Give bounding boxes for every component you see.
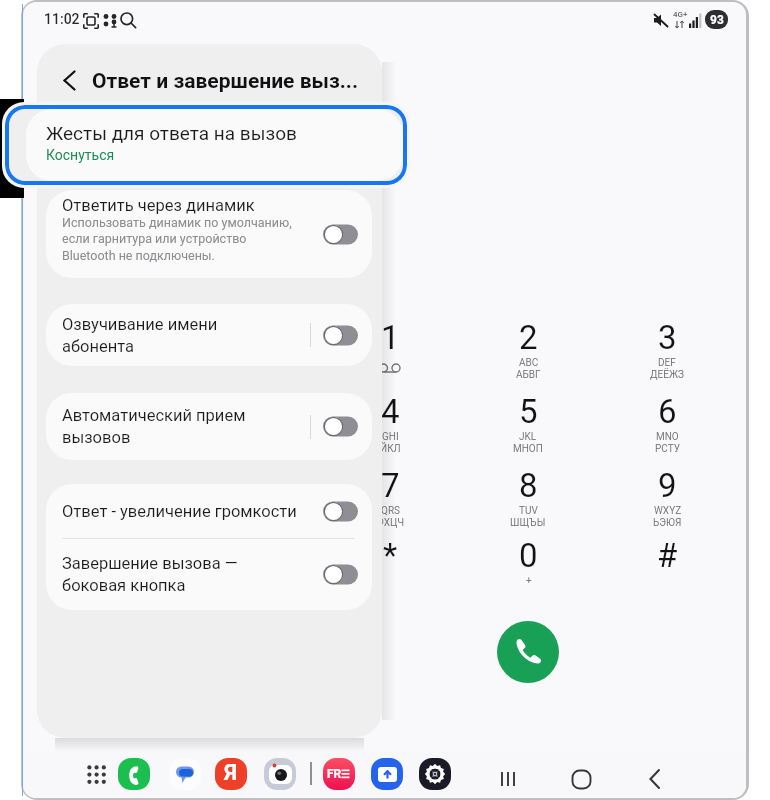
staticText: 1 xyxy=(381,318,400,357)
staticText: + xyxy=(526,575,532,587)
staticText: ABC xyxy=(519,357,539,369)
staticText: 4 xyxy=(381,392,400,431)
button[interactable]: # xyxy=(612,536,722,608)
button[interactable]: Call xyxy=(497,621,559,683)
button[interactable] xyxy=(323,501,358,522)
button[interactable]: 2 xyxy=(473,318,583,390)
staticText: РСТУ xyxy=(655,443,680,455)
staticText: ДЕЁЖЗ xyxy=(650,369,684,381)
button[interactable]: Settings xyxy=(418,757,452,791)
staticText: ЙКЛ xyxy=(380,443,401,455)
staticText: DEF xyxy=(658,357,676,369)
button[interactable]: Yandex xyxy=(214,757,248,791)
staticText: МНОП xyxy=(513,443,543,455)
staticText: Завершение вызова — боковая кнопка xyxy=(62,554,315,595)
staticText: Автоматический прием вызовов xyxy=(62,406,310,447)
button[interactable]: Завершение вызова — боковая кнопка xyxy=(46,539,372,610)
staticText: 8 xyxy=(519,466,538,505)
button[interactable] xyxy=(323,325,358,346)
button[interactable]: 6 xyxy=(612,392,722,464)
staticText: GHI xyxy=(382,431,399,443)
staticText: 93 xyxy=(710,13,724,27)
staticText: 9 xyxy=(658,466,677,505)
staticText: Коснуться xyxy=(46,147,115,163)
staticText: MNO xyxy=(656,431,679,443)
button[interactable]: 1 xyxy=(335,318,445,390)
button[interactable]: Автоматический прием вызовов xyxy=(46,393,372,460)
staticText: TUV xyxy=(519,505,538,517)
button[interactable]: 4 xyxy=(335,392,445,464)
button[interactable]: Back xyxy=(47,58,91,102)
button[interactable] xyxy=(323,224,358,245)
staticText: Я xyxy=(224,760,238,786)
button[interactable]: Recent apps xyxy=(486,757,530,798)
staticText: QRS xyxy=(381,505,400,517)
staticText: 6 xyxy=(658,392,677,431)
staticText: Ответ - увеличение громкости xyxy=(62,502,315,521)
button[interactable]: All apps xyxy=(81,759,111,789)
button[interactable]: * xyxy=(335,536,445,608)
staticText: 3 xyxy=(658,318,677,357)
staticText: ШЩЪЫ xyxy=(510,517,546,529)
button[interactable]: 8 xyxy=(473,466,583,538)
staticText: ЬЭЮЯ xyxy=(653,517,682,529)
staticText: Использовать динамик по умолчанию, если … xyxy=(62,215,292,263)
button[interactable]: 7 xyxy=(335,466,445,538)
button[interactable]: Home xyxy=(559,757,603,798)
staticText: 0 xyxy=(519,536,538,575)
button[interactable]: Back xyxy=(633,757,677,798)
button[interactable]: Camera xyxy=(263,757,297,791)
staticText: * xyxy=(383,536,398,575)
staticText: Ответ и завершение выз... xyxy=(92,69,359,94)
staticText: FR xyxy=(327,767,342,781)
staticText: JKL xyxy=(519,431,537,443)
button[interactable]: Озвучивание имени абонента xyxy=(46,304,372,366)
button[interactable]: 3 xyxy=(612,318,722,390)
button[interactable]: Ответить через динамик xyxy=(46,190,372,278)
staticText: 11:02 xyxy=(44,11,80,27)
staticText: АБВГ xyxy=(516,369,541,381)
button[interactable]: Messages xyxy=(168,757,202,791)
button[interactable]: Ответ - увеличение громкости xyxy=(46,484,372,539)
staticText: Жесты для ответа на вызов xyxy=(46,122,297,144)
button[interactable]: Жесты для ответа на вызов xyxy=(5,105,407,185)
staticText: 5 xyxy=(519,392,538,431)
staticText: ФХЦЧ xyxy=(376,517,405,529)
staticText: 4G+ xyxy=(673,10,688,19)
staticText: Ответить через динамик xyxy=(62,196,255,215)
button[interactable]: 9 xyxy=(612,466,722,538)
button[interactable] xyxy=(323,564,358,585)
button[interactable]: Phone xyxy=(117,757,151,791)
button[interactable]: Drive xyxy=(370,757,404,791)
button[interactable] xyxy=(323,416,358,437)
button[interactable]: Free xyxy=(322,757,356,791)
button[interactable]: 5 xyxy=(473,392,583,464)
staticText: Озвучивание имени абонента xyxy=(62,315,310,356)
button[interactable]: 0 xyxy=(473,536,583,608)
staticText: # xyxy=(657,536,678,575)
staticText: WXYZ xyxy=(654,505,682,517)
staticText: 2 xyxy=(519,318,538,357)
staticText: 7 xyxy=(381,466,400,505)
